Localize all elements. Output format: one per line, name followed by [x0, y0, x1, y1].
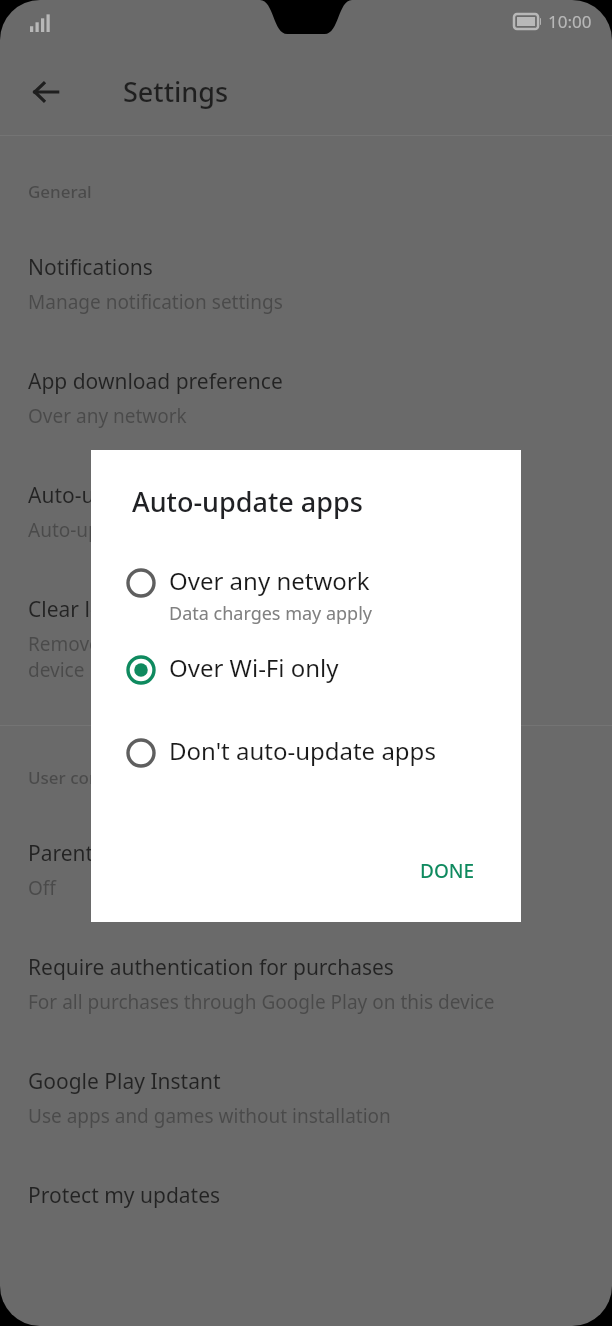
- staticText: Require authentication for purchases: [28, 953, 394, 982]
- staticText: Google Play Instant: [28, 1067, 221, 1096]
- staticText: Use apps and games without installation: [28, 1103, 391, 1129]
- staticText: 10:00: [548, 10, 592, 33]
- staticText: Don't auto-update apps: [169, 734, 436, 767]
- button[interactable]: Over any network: [91, 558, 521, 632]
- staticText: Over Wi-Fi only: [169, 651, 339, 684]
- staticText: Auto-update apps: [28, 481, 205, 510]
- staticText: Remove all the searches you have perform…: [28, 631, 516, 683]
- staticText: Parental controls: [28, 839, 196, 868]
- staticText: Off: [28, 875, 56, 901]
- button[interactable]: Protect my updates: [0, 1181, 612, 1210]
- staticText: User controls: [28, 766, 137, 789]
- staticText: Over any network: [28, 403, 187, 429]
- button[interactable]: Over Wi-Fi only: [91, 645, 521, 691]
- button[interactable]: Notifications: [0, 253, 612, 315]
- staticText: Auto-update apps over Wi-Fi only: [28, 517, 324, 543]
- staticText: General: [28, 180, 92, 203]
- staticText: App download preference: [28, 367, 283, 396]
- button[interactable]: Auto-update apps: [0, 481, 612, 543]
- staticText: Notifications: [28, 253, 153, 282]
- staticText: Clear local search history: [28, 595, 274, 624]
- button[interactable]: Require authentication for purchases: [0, 953, 612, 1015]
- button[interactable]: DONE: [398, 846, 497, 896]
- staticText: Manage notification settings: [28, 289, 283, 315]
- staticText: Auto-update apps: [132, 483, 363, 520]
- button[interactable]: Google Play Instant: [0, 1067, 612, 1129]
- button[interactable]: Parental controls: [0, 839, 612, 901]
- staticText: Data charges may apply: [169, 601, 373, 626]
- button[interactable]: Clear local search history: [0, 595, 612, 683]
- staticText: Protect my updates: [28, 1181, 221, 1210]
- staticText: DONE: [420, 858, 475, 884]
- button[interactable]: Back: [22, 68, 70, 116]
- button[interactable]: App download preference: [0, 367, 612, 429]
- button[interactable]: Don't auto-update apps: [91, 728, 521, 774]
- staticText: Settings: [123, 73, 229, 110]
- staticText: Over any network: [169, 564, 370, 597]
- staticText: For all purchases through Google Play on…: [28, 989, 495, 1015]
